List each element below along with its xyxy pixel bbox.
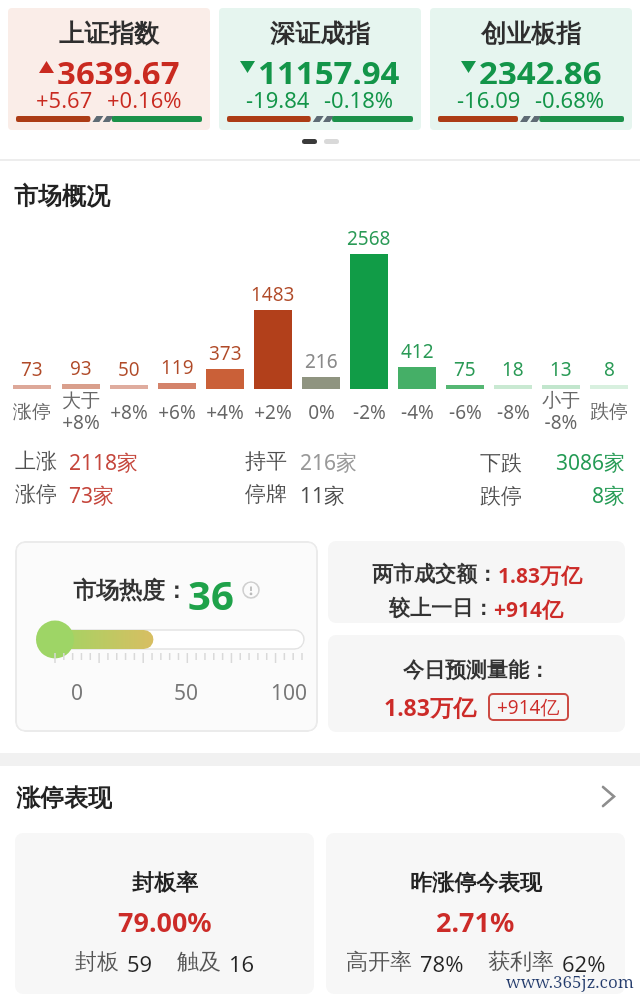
staticText: 16: [229, 948, 255, 978]
staticText: +914亿: [494, 595, 564, 623]
staticText: 涨停: [15, 481, 57, 507]
staticText: 93: [70, 355, 92, 381]
staticText: 0%: [308, 399, 335, 425]
button[interactable]: 封板率: [15, 833, 314, 994]
staticText: -2%: [353, 399, 386, 425]
staticText: 1.83万亿: [384, 691, 476, 722]
staticText: 较上一日：: [389, 595, 494, 621]
staticText: 2342.86: [479, 50, 602, 84]
staticText: 13: [550, 356, 572, 382]
staticText: 412: [401, 338, 434, 364]
staticText: 创业板指: [481, 18, 581, 49]
staticText: 79.00%: [118, 903, 212, 940]
staticText: 跌停: [590, 400, 628, 424]
staticText: 2.71%: [436, 903, 515, 940]
staticText: 获利率: [488, 948, 554, 976]
staticText: -4%: [401, 399, 434, 425]
staticText: 触及: [177, 948, 221, 976]
staticText: 上证指数: [59, 18, 159, 49]
staticText: +8%: [110, 399, 148, 425]
staticText: +914亿: [497, 694, 560, 720]
staticText: 36: [188, 567, 234, 613]
staticText: 2118家: [69, 448, 139, 477]
button[interactable]: 创业板指: [430, 8, 632, 130]
staticText: 1.83万亿: [498, 561, 582, 590]
staticText: 昨涨停今表现: [410, 869, 542, 897]
staticText: 高开率: [346, 948, 412, 976]
staticText: 3086家: [556, 448, 626, 477]
staticText: 跌停: [480, 483, 522, 509]
staticText: 持平: [245, 448, 287, 474]
staticText: www.365jz.com: [506, 970, 634, 993]
staticText: 上涨: [15, 448, 57, 474]
button[interactable]: 上证指数: [8, 8, 210, 130]
staticText: 深证成指: [270, 18, 370, 49]
staticText: -6%: [449, 399, 482, 425]
staticText: +2%: [254, 399, 292, 425]
staticText: 50: [118, 356, 140, 382]
staticText: -0.18%: [324, 84, 394, 112]
staticText: 市场概况: [14, 181, 110, 211]
staticText: 50: [174, 678, 199, 707]
staticText: 73: [21, 356, 43, 382]
staticText: 11家: [300, 481, 346, 510]
staticText: 8: [604, 356, 615, 382]
button[interactable]: 市场热度：: [15, 541, 318, 732]
staticText: -19.84: [246, 84, 310, 112]
staticText: 78%: [420, 948, 464, 978]
staticText: 今日预测量能：: [403, 657, 550, 683]
staticText: 100: [271, 678, 308, 707]
staticText: 停牌: [245, 481, 287, 507]
staticText: 封板: [75, 948, 119, 976]
staticText: 3639.67: [57, 50, 180, 84]
button[interactable]: 昨涨停今表现: [326, 833, 625, 994]
staticText: -16.09: [457, 84, 521, 112]
staticText: 涨停表现: [16, 783, 112, 809]
staticText: 1483: [251, 281, 295, 307]
staticText: 73家: [69, 481, 115, 510]
staticText: 59: [127, 948, 153, 978]
staticText: 216: [305, 348, 338, 374]
staticText: 涨停: [13, 400, 51, 424]
staticText: +5.67: [36, 84, 93, 112]
staticText: 373: [209, 340, 242, 366]
staticText: 小于 -8%: [542, 389, 580, 435]
staticText: 封板率: [132, 869, 198, 897]
staticText: 216家: [300, 448, 358, 477]
staticText: +4%: [206, 399, 244, 425]
staticText: 大于 +8%: [62, 389, 100, 435]
staticText: 119: [161, 354, 194, 380]
staticText: 75: [454, 356, 476, 382]
staticText: -8%: [497, 399, 530, 425]
staticText: 18: [502, 356, 524, 382]
staticText: 11157.94: [258, 50, 400, 84]
staticText: 下跌: [480, 450, 522, 476]
staticText: +0.16%: [107, 84, 182, 112]
button[interactable]: 今日预测量能：: [328, 635, 625, 732]
staticText: 0: [71, 678, 84, 707]
staticText: 市场热度：: [73, 576, 188, 605]
staticText: 62%: [562, 948, 606, 978]
staticText: -0.68%: [535, 84, 605, 112]
button[interactable]: 两市成交额：: [328, 541, 625, 623]
button[interactable]: 深证成指: [219, 8, 421, 130]
button[interactable]: 涨停表现: [16, 783, 614, 809]
staticText: 2568: [347, 225, 391, 251]
staticText: 两市成交额：: [372, 561, 498, 587]
staticText: +6%: [158, 399, 196, 425]
staticText: 8家: [592, 481, 626, 510]
